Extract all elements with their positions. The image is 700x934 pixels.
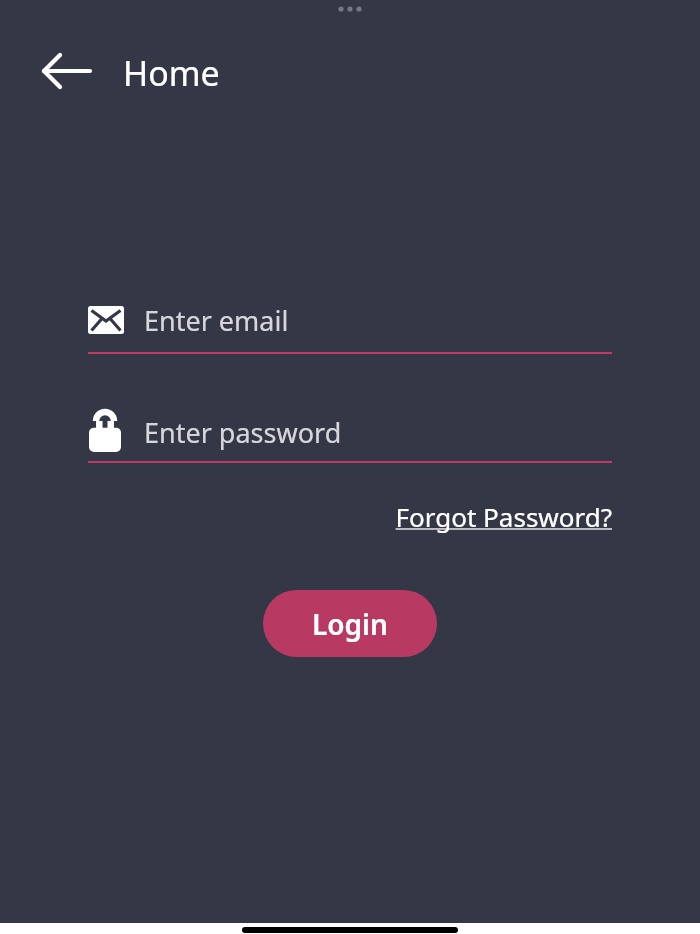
button[interactable]: Enter password	[88, 404, 612, 463]
staticText: Forgot Password?	[395, 499, 612, 534]
button[interactable]: Forgot Password?	[330, 494, 612, 538]
staticText: Enter email	[144, 302, 289, 339]
button[interactable]: Login	[263, 590, 437, 657]
staticText: Home	[123, 50, 220, 96]
staticText: Enter password	[144, 414, 342, 451]
staticText: Login	[312, 605, 388, 643]
button[interactable]: Back	[32, 47, 102, 95]
button[interactable]: Enter email	[88, 292, 612, 354]
